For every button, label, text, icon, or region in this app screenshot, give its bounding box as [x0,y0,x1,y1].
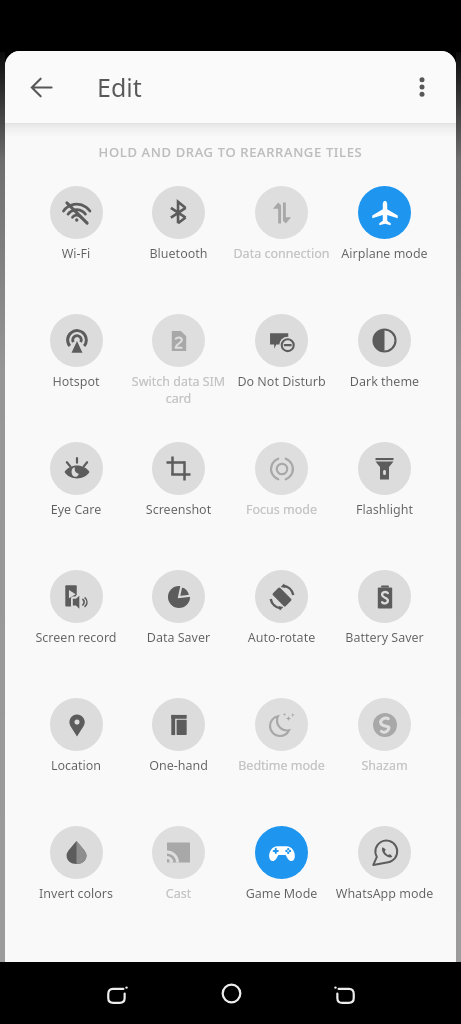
staticText: Edit [97,70,142,104]
button[interactable]: Flashlight [333,435,436,563]
staticText: Data Saver [129,629,228,646]
staticText: One-hand [129,757,228,774]
staticText: Screen record [27,629,125,646]
staticText: Airplane mode [335,245,434,262]
staticText: Auto-rotate [232,629,331,646]
staticText: Dark theme [335,373,434,390]
button[interactable]: Shazam [333,691,436,819]
button[interactable]: Do Not Disturb [230,307,333,435]
button[interactable]: Screenshot [127,435,230,563]
button[interactable]: Home [209,971,253,1015]
staticText: Switch data SIM card [129,373,228,406]
staticText: Wi-Fi [27,245,125,262]
button[interactable]: Bluetooth [127,179,230,307]
staticText: Game Mode [232,885,331,902]
button[interactable]: Hotspot [25,307,127,435]
staticText: Bluetooth [129,245,228,262]
button[interactable]: Data Saver [127,563,230,691]
button[interactable]: One-hand [127,691,230,819]
button[interactable]: Data connection [230,179,333,307]
button[interactable]: Battery Saver [333,563,436,691]
staticText: Battery Saver [335,629,434,646]
staticText: Cast [129,885,228,902]
button[interactable]: Eye Care [25,435,127,563]
staticText: HOLD AND DRAG TO REARRANGE TILES [5,143,456,161]
staticText: Location [27,757,125,774]
staticText: Data connection [232,245,331,262]
staticText: Shazam [335,757,434,774]
staticText: Invert colors [27,885,125,902]
staticText: Bedtime mode [232,757,331,774]
button[interactable]: WhatsApp mode [333,819,436,947]
button[interactable]: Game Mode [230,819,333,947]
button[interactable]: Recent apps [322,971,366,1015]
staticText: Screenshot [129,501,228,518]
button[interactable]: Airplane mode [333,179,436,307]
staticText: Do Not Disturb [232,373,331,390]
button[interactable]: Wi-Fi [25,179,127,307]
staticText: Eye Care [27,501,125,518]
button[interactable]: Focus mode [230,435,333,563]
staticText: Focus mode [232,501,331,518]
button[interactable]: Location [25,691,127,819]
button[interactable]: Navigate up [17,63,65,111]
staticText: Flashlight [335,501,434,518]
button[interactable]: Bedtime mode [230,691,333,819]
staticText: WhatsApp mode [335,885,434,902]
staticText: Hotspot [27,373,125,390]
button[interactable]: Invert colors [25,819,127,947]
button[interactable]: More options [398,63,446,111]
button[interactable]: Auto-rotate [230,563,333,691]
button[interactable]: Screen record [25,563,127,691]
button[interactable]: Back [95,971,139,1015]
button[interactable]: Cast [127,819,230,947]
button[interactable]: Switch data SIM card [127,307,230,435]
button[interactable]: Dark theme [333,307,436,435]
